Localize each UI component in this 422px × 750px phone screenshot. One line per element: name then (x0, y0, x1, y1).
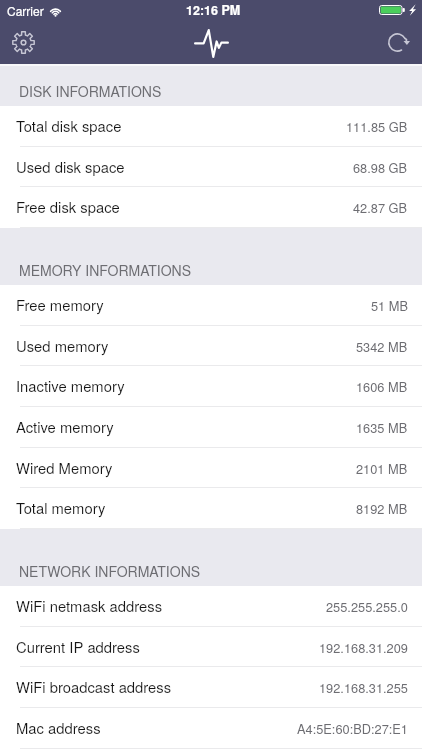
staticText: A4:5E:60:BD:27:E1 (297, 719, 408, 737)
staticText: 8192 MB (356, 499, 408, 517)
staticText: 5342 MB (356, 337, 408, 355)
staticText: 192.168.31.255 (319, 678, 408, 696)
staticText: 51 MB (371, 296, 408, 314)
staticText: Active memory (16, 416, 114, 437)
button[interactable]: Mac address (0, 708, 422, 749)
button[interactable]: Free disk space (0, 187, 422, 228)
button[interactable]: Total disk space (0, 106, 422, 147)
button[interactable]: WiFi netmask address (0, 586, 422, 627)
button[interactable]: Refresh (376, 20, 422, 64)
button[interactable]: Settings (0, 20, 46, 64)
staticText: 12:16 PM (186, 1, 241, 19)
button[interactable]: Total memory (0, 488, 422, 529)
staticText: Used disk space (16, 156, 125, 177)
staticText: 2101 MB (356, 459, 408, 477)
staticText: WiFi broadcast address (16, 676, 172, 697)
button[interactable]: Wired Memory (0, 448, 422, 488)
staticText: 192.168.31.209 (319, 638, 408, 656)
button[interactable]: Used memory (0, 326, 422, 366)
staticText: 68.98 GB (353, 158, 408, 176)
staticText: WiFi netmask address (16, 595, 163, 616)
staticText: Inactive memory (16, 375, 125, 396)
button[interactable]: Inactive memory (0, 366, 422, 407)
button[interactable]: Current IP address (0, 627, 422, 667)
staticText: 111.85 GB (346, 117, 408, 135)
staticText: Total disk space (16, 115, 122, 136)
staticText: Current IP address (16, 636, 140, 657)
staticText: 1606 MB (356, 377, 408, 395)
button[interactable]: WiFi broadcast address (0, 667, 422, 708)
staticText: Used memory (16, 335, 109, 356)
staticText: NETWORK INFORMATIONS (19, 561, 201, 581)
staticText: Carrier (7, 2, 44, 19)
button[interactable]: Active memory (0, 407, 422, 448)
staticText: Free disk space (16, 196, 120, 217)
staticText: DISK INFORMATIONS (19, 81, 162, 101)
staticText: Free memory (16, 294, 104, 315)
staticText: 42.87 GB (353, 198, 408, 216)
staticText: Wired Memory (16, 457, 113, 478)
staticText: 255.255.255.0 (326, 597, 408, 615)
staticText: MEMORY INFORMATIONS (19, 260, 191, 280)
staticText: Mac address (16, 717, 101, 738)
staticText: 1635 MB (356, 418, 408, 436)
button[interactable]: Free memory (0, 285, 422, 326)
staticText: Total memory (16, 497, 106, 518)
button[interactable]: Used disk space (0, 147, 422, 187)
